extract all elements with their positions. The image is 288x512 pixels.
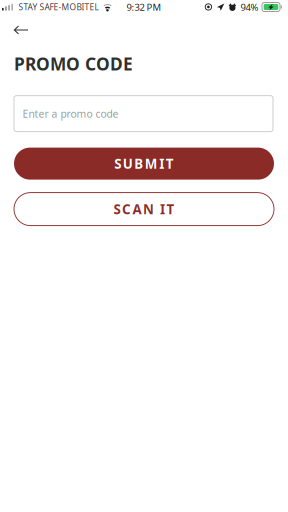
staticText: SUBMIT: [114, 154, 174, 173]
button[interactable]: SCAN IT: [14, 193, 274, 226]
staticText: STAY SAFE-MOBITEL: [18, 1, 98, 13]
button[interactable]: SUBMIT: [14, 148, 274, 180]
staticText: 9:32 PM: [126, 1, 161, 13]
staticText: Enter a promo code: [22, 106, 118, 121]
button[interactable]: Back: [0, 18, 47, 42]
staticText: SCAN IT: [113, 200, 174, 218]
staticText: PROMO CODE: [14, 52, 133, 76]
staticText: 94%: [240, 1, 258, 13]
